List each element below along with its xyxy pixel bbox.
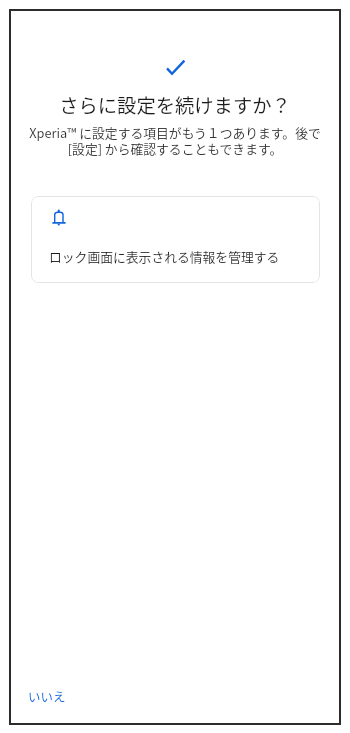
button[interactable]: 通知 bbox=[31, 196, 320, 283]
button[interactable]: いいえ bbox=[20, 681, 74, 711]
staticText: Xperia™ に設定する項目がもう１つあります。後で [設定] から確認するこ… bbox=[12, 123, 338, 158]
other: 通知 bbox=[52, 209, 67, 227]
staticText: さらに設定を続けますか？ bbox=[14, 91, 336, 119]
staticText: いいえ bbox=[28, 687, 66, 705]
staticText: ロック画面に表示される情報を管理する bbox=[49, 247, 280, 266]
